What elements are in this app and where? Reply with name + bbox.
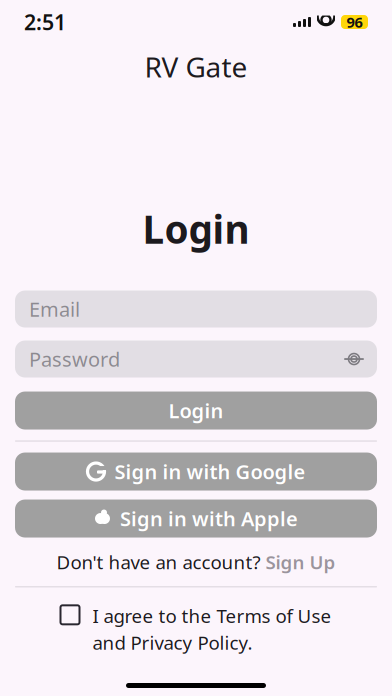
- staticText: RV Gate: [144, 48, 247, 85]
- button[interactable]: Sign Up: [265, 549, 335, 574]
- staticText: and Privacy Policy.: [92, 630, 252, 655]
- staticText: Email: [29, 296, 80, 322]
- staticText: I agree to the Terms of Use: [92, 603, 331, 628]
- button[interactable]: Login: [15, 391, 377, 429]
- button[interactable]: Sign in with Apple: [15, 499, 377, 537]
- staticText: Sign in with Google: [114, 458, 305, 485]
- staticText: Don't have an account?: [56, 549, 260, 574]
- button[interactable]: Sign in with Google: [15, 452, 377, 490]
- staticText: Password: [29, 346, 120, 372]
- staticText: 2:51: [24, 8, 66, 36]
- staticText: Sign Up: [265, 549, 335, 574]
- staticText: 96: [346, 12, 362, 32]
- button[interactable]: I agree to the Terms of Use: [60, 603, 331, 655]
- staticText: Login: [168, 397, 223, 424]
- staticText: Login: [142, 203, 249, 254]
- staticText: Sign in with Apple: [120, 505, 298, 532]
- button[interactable]: Show password: [339, 344, 369, 374]
